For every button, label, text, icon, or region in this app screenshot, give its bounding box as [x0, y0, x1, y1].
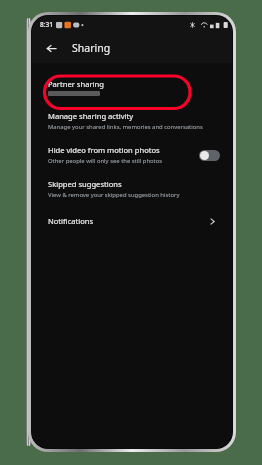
staticText: Partner sharing — [48, 79, 104, 89]
staticText: Other people will only see the still pho… — [48, 157, 163, 165]
staticText: Skipped suggestions — [48, 179, 122, 189]
button[interactable]: Back — [40, 37, 62, 59]
button[interactable]: Skipped suggestions — [32, 172, 232, 206]
staticText: Sharing — [72, 41, 111, 55]
staticText: Manage sharing activity — [48, 111, 134, 121]
button[interactable]: Hide video from motion photos toggle — [199, 150, 220, 161]
button[interactable]: Notifications — [32, 206, 232, 236]
staticText: View & remove your skipped suggestion hi… — [48, 191, 180, 199]
staticText: Hide video from motion photos — [48, 145, 160, 155]
button[interactable]: Partner sharing — [32, 72, 232, 104]
button[interactable]: Manage sharing activity — [32, 104, 232, 138]
staticText: 8:31 — [40, 20, 53, 29]
button[interactable]: Open notifications settings — [204, 213, 220, 229]
button[interactable]: Hide video from motion photos — [32, 138, 232, 172]
staticText: Notifications — [48, 216, 94, 226]
staticText: Manage your shared links, memories and c… — [48, 123, 203, 131]
